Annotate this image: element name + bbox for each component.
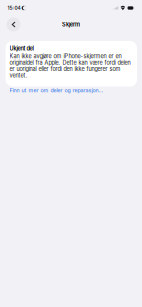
staticText: Skjerm [62,21,80,28]
staticText: Kan ikke avgjøre om iPhone-skjermen er e… [9,53,130,79]
staticText: Finn ut mer om deler og reparasjon… [9,87,103,93]
button[interactable]: Back [5,16,22,33]
staticText: 15:04 [7,5,20,11]
button[interactable]: Finn ut mer om deler og reparasjon… [5,87,137,93]
staticText: Ukjent del [9,45,33,52]
